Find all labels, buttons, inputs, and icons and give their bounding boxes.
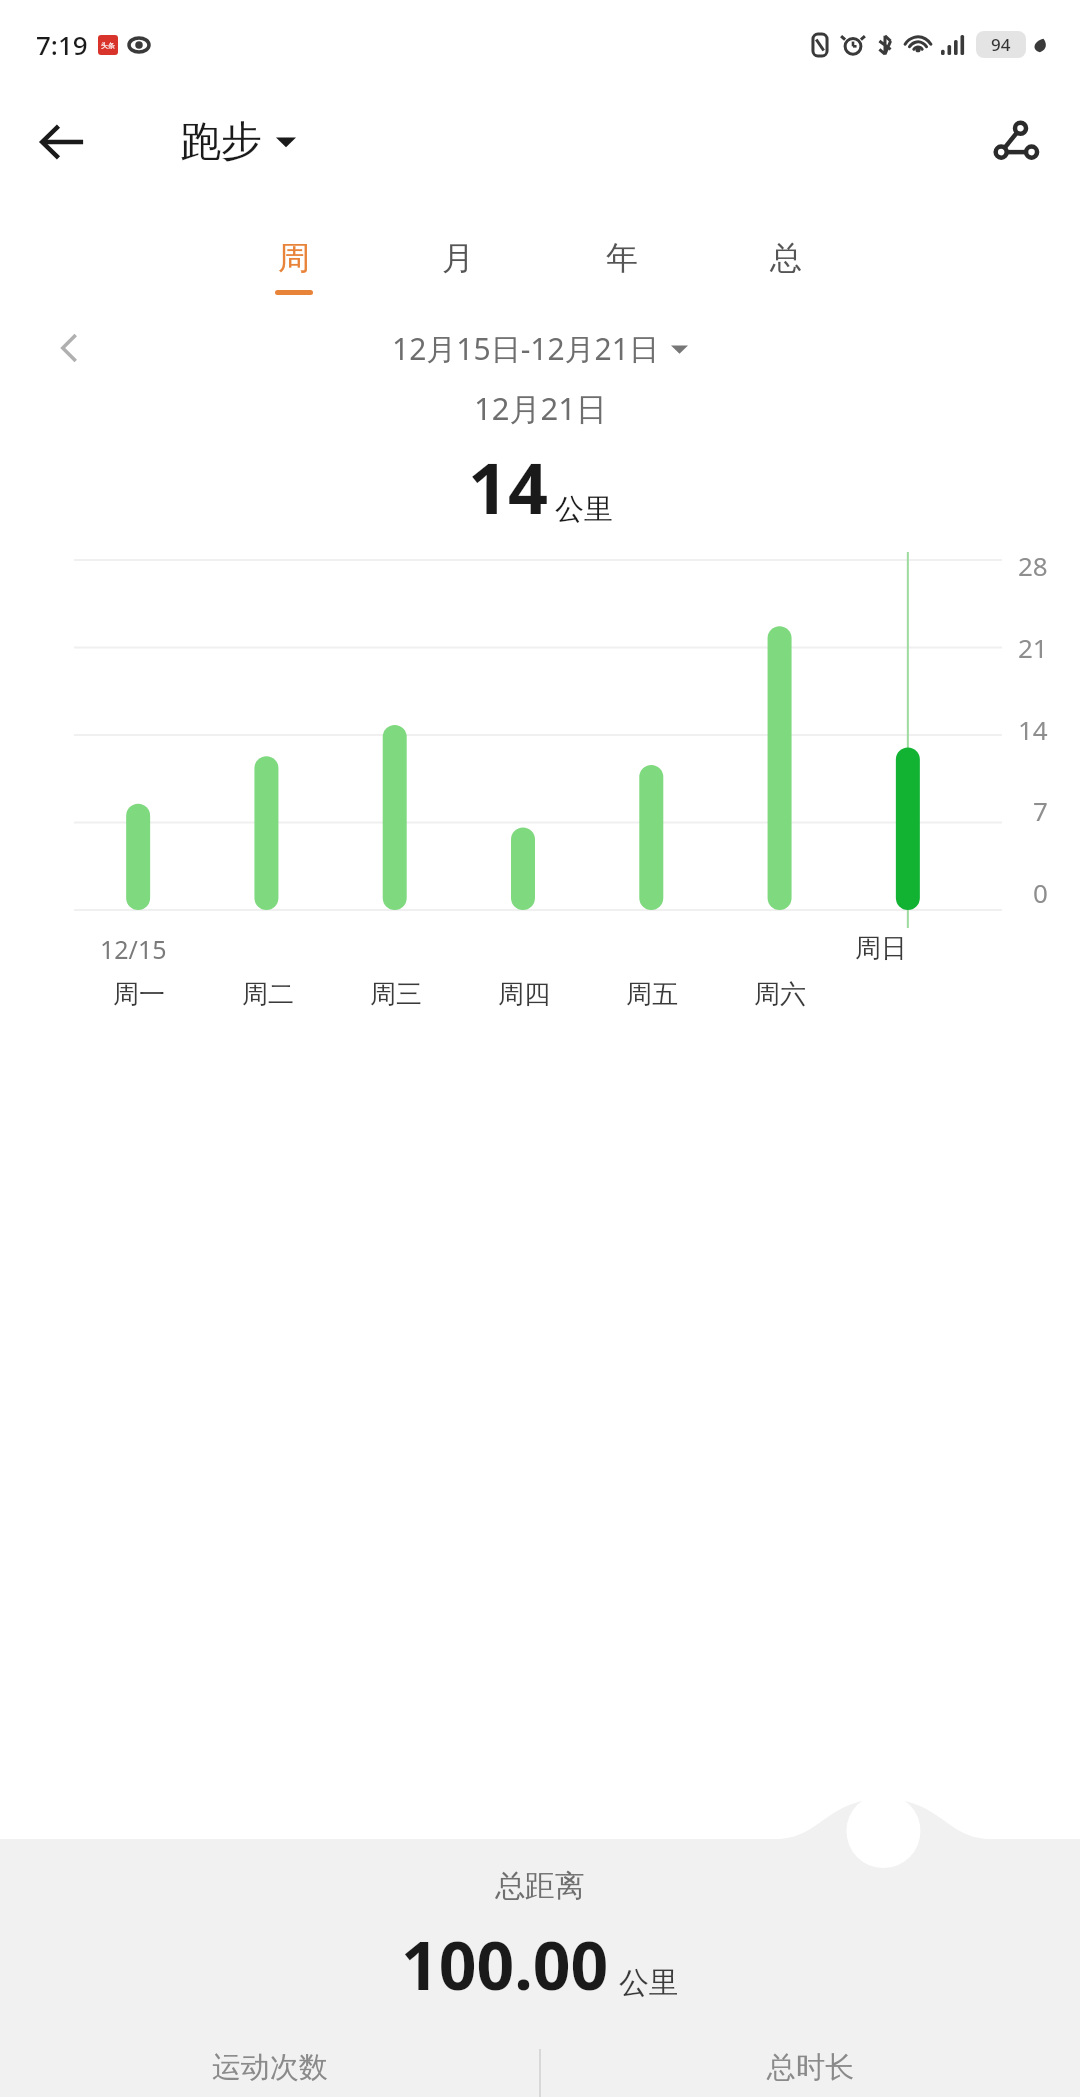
button[interactable]: 周 xyxy=(262,238,326,295)
staticText: 100.00 xyxy=(401,1919,609,2009)
staticText: 周二 xyxy=(242,978,294,1011)
button[interactable]: Previous week xyxy=(46,324,94,372)
staticText: 总 xyxy=(770,238,802,278)
staticText: 公里 xyxy=(555,491,613,528)
staticText: 12月15日-12月21日 xyxy=(392,328,659,369)
button[interactable]: 12月15日-12月21日 xyxy=(392,328,688,369)
staticText: 周四 xyxy=(498,978,550,1011)
staticText: 12月21日 xyxy=(474,387,607,429)
staticText: 年 xyxy=(606,238,638,278)
button[interactable]: Share xyxy=(980,107,1050,177)
button[interactable]: 总 xyxy=(754,238,818,295)
staticText: 21 xyxy=(1018,630,1048,665)
staticText: 周五 xyxy=(626,978,678,1011)
staticText: 0 xyxy=(1033,875,1048,910)
staticText: 运动次数 xyxy=(212,2049,328,2086)
staticText: 94 xyxy=(991,33,1011,56)
staticText: 总时长 xyxy=(767,2049,854,2086)
staticText: 周六 xyxy=(754,978,806,1011)
staticText: 周一 xyxy=(113,978,165,1011)
staticText: 14 xyxy=(1018,712,1048,747)
button[interactable]: 月 xyxy=(426,238,490,295)
staticText: 公里 xyxy=(619,1964,679,2002)
staticText: 7 xyxy=(1033,793,1048,828)
button[interactable]: 总时长 xyxy=(540,2049,1080,2097)
staticText: 总距离 xyxy=(495,1867,585,1905)
staticText: 周日 xyxy=(855,932,907,965)
button[interactable]: 年 xyxy=(590,238,654,295)
staticText: 头条 xyxy=(101,41,115,50)
staticText: 周 xyxy=(278,238,310,278)
staticText: 28 xyxy=(1018,548,1048,583)
staticText: 跑步 xyxy=(180,116,262,168)
staticText: 月 xyxy=(442,238,474,278)
button[interactable]: 跑步 xyxy=(180,116,296,168)
button[interactable]: 运动次数 xyxy=(0,2049,540,2097)
staticText: 12/15 xyxy=(100,932,167,966)
staticText: 周三 xyxy=(370,978,422,1011)
button[interactable]: Back xyxy=(30,110,94,174)
staticText: 14 xyxy=(468,439,549,534)
staticText: 7:19 xyxy=(36,27,88,62)
